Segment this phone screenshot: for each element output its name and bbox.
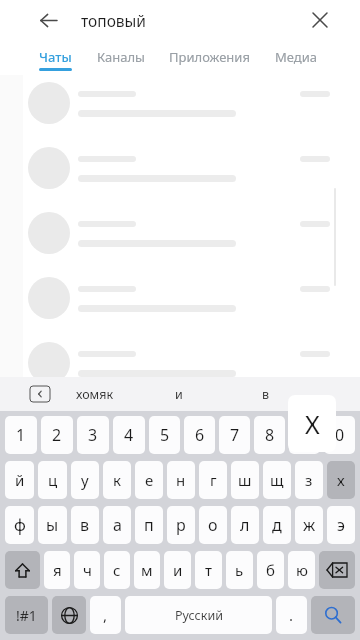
staticText: л bbox=[240, 514, 250, 536]
button[interactable]: г bbox=[199, 461, 227, 499]
staticText: Приложения bbox=[169, 48, 250, 66]
button[interactable]: ы bbox=[38, 506, 67, 544]
button[interactable]: ф bbox=[5, 506, 34, 544]
button[interactable]: Search bbox=[311, 596, 355, 634]
button[interactable]: Back bbox=[33, 5, 63, 35]
staticText: н bbox=[176, 470, 186, 490]
button[interactable]: Чаты bbox=[38, 40, 73, 75]
button[interactable]: Каналы bbox=[96, 40, 145, 75]
button[interactable]: а bbox=[103, 506, 131, 544]
staticText: . bbox=[289, 605, 294, 625]
button[interactable]: Медиа bbox=[274, 40, 318, 75]
staticText: Русский bbox=[175, 607, 223, 624]
button[interactable] bbox=[0, 275, 360, 335]
staticText: э bbox=[337, 514, 345, 536]
button[interactable]: к bbox=[103, 461, 131, 499]
button[interactable]: !#1 bbox=[5, 596, 48, 634]
staticText: Чаты bbox=[39, 48, 72, 66]
button[interactable]: у bbox=[71, 461, 99, 499]
staticText: в bbox=[80, 514, 90, 536]
button[interactable]: 9 bbox=[289, 416, 320, 454]
button[interactable]: 7 bbox=[219, 416, 250, 454]
button[interactable]: ю bbox=[288, 551, 315, 589]
staticText: й bbox=[15, 470, 25, 490]
button[interactable] bbox=[0, 340, 360, 400]
button[interactable]: б bbox=[257, 551, 284, 589]
button[interactable]: хомяк bbox=[76, 386, 114, 403]
button[interactable]: д bbox=[263, 506, 291, 544]
button[interactable]: м bbox=[134, 551, 160, 589]
staticText: ь bbox=[235, 560, 244, 580]
staticText: 2 bbox=[52, 424, 62, 446]
button[interactable]: э bbox=[327, 506, 355, 544]
button[interactable] bbox=[0, 145, 360, 205]
button[interactable]: Shift bbox=[5, 551, 40, 589]
button[interactable]: 5 bbox=[149, 416, 180, 454]
staticText: 6 bbox=[195, 424, 205, 446]
button[interactable]: Приложения bbox=[169, 40, 250, 75]
button[interactable]: и bbox=[164, 551, 191, 589]
button[interactable]: в bbox=[71, 506, 99, 544]
staticText: д bbox=[272, 514, 282, 536]
staticText: р bbox=[176, 514, 186, 536]
button[interactable]: ч bbox=[74, 551, 100, 589]
button[interactable]: х bbox=[327, 461, 355, 499]
staticText: 8 bbox=[265, 424, 275, 446]
staticText: 9 bbox=[300, 424, 310, 446]
button[interactable]: з bbox=[295, 461, 323, 499]
staticText: в bbox=[262, 386, 270, 403]
staticText: щ bbox=[270, 470, 284, 490]
staticText: ч bbox=[83, 560, 92, 580]
staticText: м bbox=[141, 560, 153, 580]
staticText: и bbox=[175, 386, 183, 403]
button[interactable]: щ bbox=[263, 461, 291, 499]
button[interactable]: т bbox=[195, 551, 222, 589]
button[interactable]: 6 bbox=[184, 416, 215, 454]
button[interactable]: в bbox=[262, 386, 270, 403]
button[interactable]: ь bbox=[226, 551, 253, 589]
button[interactable]: Русский bbox=[125, 596, 272, 634]
staticText: 5 bbox=[160, 424, 170, 446]
button[interactable]: 3 bbox=[77, 416, 109, 454]
button[interactable]: 2 bbox=[41, 416, 73, 454]
button[interactable]: Close bbox=[305, 5, 335, 35]
button[interactable]: и bbox=[175, 386, 183, 403]
staticText: а bbox=[113, 514, 122, 536]
button[interactable]: ж bbox=[295, 506, 323, 544]
staticText: з bbox=[305, 470, 313, 490]
button[interactable]: , bbox=[90, 596, 121, 634]
button[interactable]: с bbox=[104, 551, 130, 589]
button[interactable]: Change language bbox=[52, 596, 86, 634]
button[interactable]: 8 bbox=[254, 416, 285, 454]
button[interactable]: 1 bbox=[5, 416, 37, 454]
button[interactable]: п bbox=[135, 506, 163, 544]
button[interactable]: я bbox=[44, 551, 70, 589]
staticText: ш bbox=[238, 470, 252, 490]
button[interactable]: ц bbox=[38, 461, 67, 499]
staticText: ю bbox=[296, 560, 308, 580]
button[interactable]: й bbox=[5, 461, 34, 499]
button[interactable]: . bbox=[276, 596, 307, 634]
button[interactable]: н bbox=[167, 461, 195, 499]
staticText: Х bbox=[305, 407, 320, 441]
staticText: ф bbox=[14, 514, 26, 536]
staticText: 4 bbox=[124, 424, 134, 446]
button[interactable]: ш bbox=[231, 461, 259, 499]
button[interactable] bbox=[0, 210, 360, 270]
staticText: б bbox=[266, 560, 275, 580]
button[interactable]: 0 bbox=[324, 416, 355, 454]
button[interactable]: е bbox=[135, 461, 163, 499]
staticText: с bbox=[113, 560, 121, 580]
staticText: хомяк bbox=[76, 386, 114, 403]
staticText: , bbox=[103, 605, 108, 625]
staticText: Медиа bbox=[275, 48, 318, 66]
button[interactable]: о bbox=[199, 506, 227, 544]
button[interactable] bbox=[0, 80, 360, 140]
staticText: 3 bbox=[88, 424, 98, 446]
staticText: !#1 bbox=[16, 606, 37, 625]
button[interactable]: Backspace bbox=[319, 551, 355, 589]
button[interactable]: р bbox=[167, 506, 195, 544]
button[interactable]: 4 bbox=[113, 416, 145, 454]
button[interactable]: л bbox=[231, 506, 259, 544]
button[interactable]: Expand suggestions bbox=[30, 386, 50, 402]
